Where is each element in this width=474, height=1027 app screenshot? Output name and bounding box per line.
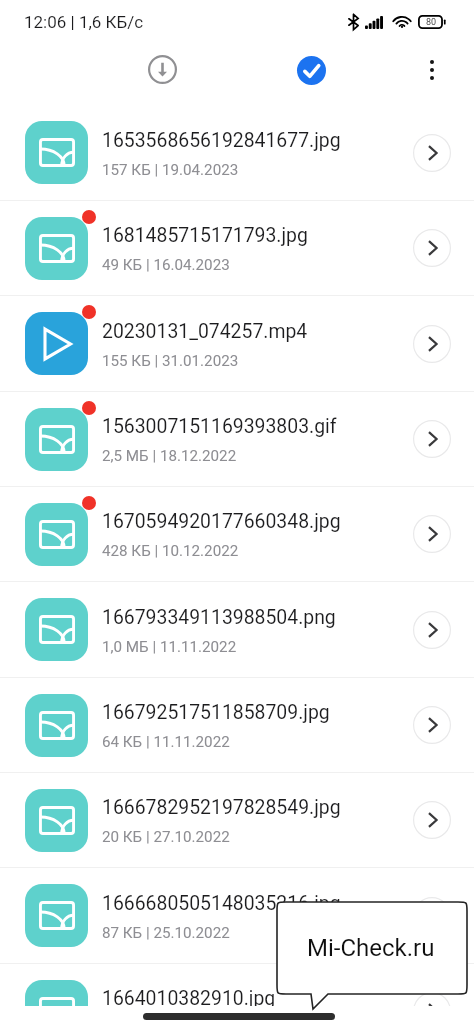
button[interactable]: Open xyxy=(410,989,454,1006)
staticText: 49 КБ | 16.04.2023 xyxy=(102,256,230,274)
button[interactable]: 1563007151169393803.gif xyxy=(0,392,474,486)
button[interactable]: Open xyxy=(410,608,454,652)
button[interactable]: Open xyxy=(410,703,454,747)
button[interactable]: 1681485715171793.jpg xyxy=(0,201,474,295)
button[interactable]: Open xyxy=(410,322,454,366)
staticText: 87 КБ | 25.10.2022 xyxy=(102,924,230,942)
button[interactable]: Open xyxy=(410,131,454,175)
staticText: 155 КБ | 31.01.2023 xyxy=(102,352,239,370)
staticText: 166793349113988504.png xyxy=(102,606,336,629)
staticText: 1664010382910.jpg xyxy=(102,987,276,1006)
staticText: 1653568656192841677.jpg xyxy=(102,129,341,152)
staticText: 428 КБ | 10.12.2022 xyxy=(102,542,239,560)
button[interactable]: 1670594920177660348.jpg xyxy=(0,487,474,581)
button[interactable]: 20230131_074257.mp4 xyxy=(0,296,474,391)
button[interactable]: Open xyxy=(410,226,454,270)
button[interactable]: More options xyxy=(411,49,453,91)
staticText: 12:06 | 1,6 КБ/с xyxy=(24,12,144,32)
staticText: 80 xyxy=(426,17,437,28)
button[interactable]: 1666782952197828549.jpg xyxy=(0,773,474,867)
staticText: 64 КБ | 11.11.2022 xyxy=(102,733,230,751)
staticText: 1681485715171793.jpg xyxy=(102,224,308,247)
staticText: 1666680505148035216.jpg xyxy=(102,892,341,915)
button[interactable]: Download xyxy=(141,48,184,91)
button[interactable]: 1653568656192841677.jpg xyxy=(0,105,474,200)
staticText: 1563007151169393803.gif xyxy=(102,415,337,438)
button[interactable]: Open xyxy=(410,894,454,938)
staticText: Mi-Check.ru xyxy=(307,934,435,962)
staticText: 1,0 МБ | 11.11.2022 xyxy=(102,638,237,656)
button[interactable]: Open xyxy=(410,417,454,461)
staticText: 166792517511858709.jpg xyxy=(102,701,330,724)
button[interactable]: Select all xyxy=(290,49,332,91)
button[interactable]: 1666680505148035216.jpg xyxy=(0,868,474,963)
staticText: 20 КБ | 27.10.2022 xyxy=(102,828,230,846)
button[interactable]: 1664010382910.jpg xyxy=(0,964,474,1006)
staticText: 20230131_074257.mp4 xyxy=(102,320,308,343)
button[interactable]: 166792517511858709.jpg xyxy=(0,678,474,772)
staticText: 1666782952197828549.jpg xyxy=(102,796,341,819)
button[interactable]: Open xyxy=(410,798,454,842)
staticText: 2,5 МБ | 18.12.2022 xyxy=(102,447,237,465)
staticText: 1670594920177660348.jpg xyxy=(102,510,341,533)
button[interactable]: Open xyxy=(410,512,454,556)
staticText: 157 КБ | 19.04.2023 xyxy=(102,161,239,179)
button[interactable]: 166793349113988504.png xyxy=(0,582,474,677)
